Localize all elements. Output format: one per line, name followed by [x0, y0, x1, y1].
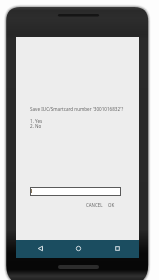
button[interactable]: Back [36, 244, 45, 253]
staticText: 2. No [30, 123, 42, 129]
button[interactable]: Home [74, 244, 83, 253]
staticText: 1. Yes [30, 118, 43, 124]
button[interactable]: CANCEL [86, 202, 103, 208]
button[interactable]: Recents [113, 244, 122, 253]
button[interactable]: OK [108, 202, 115, 208]
staticText: Save IUC/Smartcard number '3001016832'? [30, 106, 124, 112]
button[interactable] [30, 187, 121, 196]
